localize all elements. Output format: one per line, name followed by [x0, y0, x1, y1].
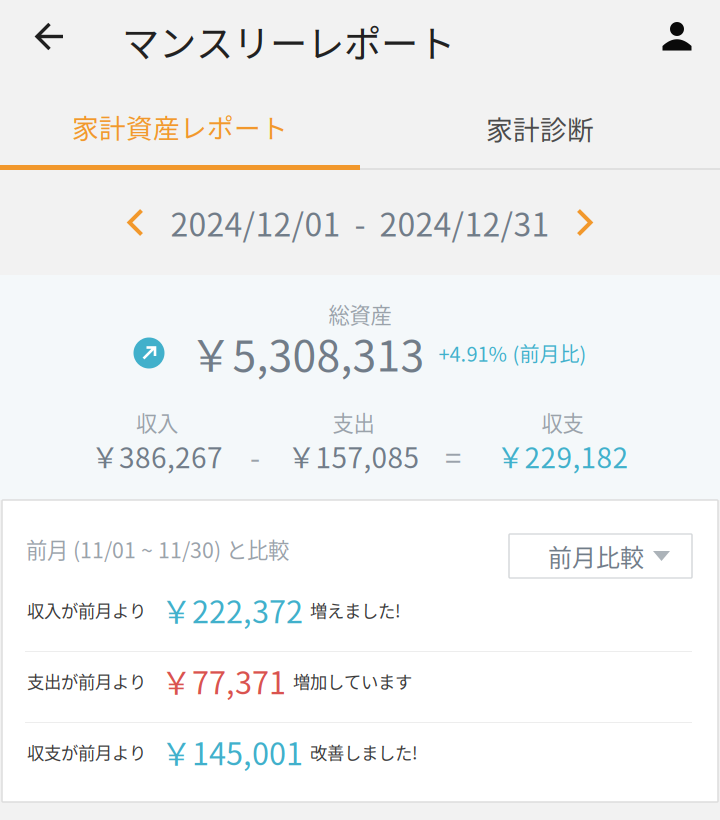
staticText: ￥145,001: [161, 730, 303, 774]
staticText: (前月比): [512, 338, 586, 367]
staticText: 家計診断: [486, 109, 594, 147]
staticText: 増加しています: [293, 668, 412, 694]
staticText: ￥77,371: [161, 659, 286, 703]
staticText: 増えました!: [310, 597, 401, 623]
staticText: 家計資産レポート: [72, 107, 288, 146]
button[interactable]: Back: [0, 0, 92, 73]
staticText: 改善しました!: [310, 739, 418, 765]
button[interactable]: 家計診断: [360, 88, 720, 170]
button[interactable]: Account: [662, 0, 720, 73]
staticText: 収支が前月より: [27, 739, 146, 765]
button[interactable]: Next month: [571, 203, 597, 241]
staticText: ￥222,372: [161, 588, 303, 632]
staticText: ￥5,308,313: [189, 322, 424, 384]
staticText: ￥229,182: [496, 436, 628, 476]
staticText: +4.91%: [438, 338, 506, 367]
staticText: 2024/12/01 - 2024/12/31: [170, 199, 549, 246]
staticText: 前月 (11/01 ~ 11/30) と比較: [26, 534, 289, 564]
staticText: 収支: [541, 407, 583, 437]
staticText: 収入が前月より: [27, 597, 146, 623]
staticText: マンスリーレポート: [122, 14, 455, 69]
staticText: ￥157,085: [287, 436, 419, 476]
staticText: 支出: [332, 407, 374, 437]
staticText: 総資産: [328, 299, 391, 329]
staticText: 前月比較: [548, 539, 644, 573]
button[interactable]: Previous month: [122, 203, 148, 241]
staticText: =: [445, 435, 461, 477]
staticText: 支出が前月より: [27, 668, 146, 694]
staticText: ￥386,267: [91, 436, 223, 476]
staticText: 収入: [136, 407, 178, 437]
button[interactable]: 前月比較: [509, 534, 692, 578]
staticText: -: [250, 435, 260, 477]
button[interactable]: 家計資産レポート: [0, 88, 360, 170]
